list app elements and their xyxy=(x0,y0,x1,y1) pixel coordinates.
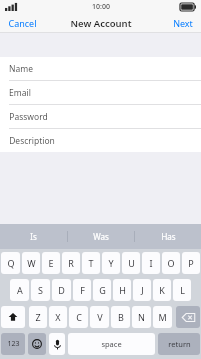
staticText: P xyxy=(188,257,194,269)
staticText: L xyxy=(180,284,185,296)
staticText: G xyxy=(99,284,106,296)
staticText: Was xyxy=(93,231,109,242)
button[interactable]: M xyxy=(153,306,172,328)
staticText: D xyxy=(58,284,65,296)
staticText: U xyxy=(128,257,135,269)
button[interactable]: U xyxy=(122,252,140,274)
staticText: Name xyxy=(9,63,33,75)
button[interactable]: Emoji xyxy=(28,333,46,355)
button[interactable]: Z xyxy=(29,306,47,328)
staticText: C xyxy=(76,311,82,323)
button[interactable]: Backspace xyxy=(176,306,200,328)
button[interactable]: N xyxy=(132,306,151,328)
button[interactable]: Description xyxy=(0,129,201,152)
button[interactable]: H xyxy=(113,279,131,301)
staticText: H xyxy=(119,284,126,296)
button[interactable]: A xyxy=(10,279,29,301)
staticText: Y xyxy=(108,257,114,269)
button[interactable]: Cancel xyxy=(0,15,45,31)
staticText: Is xyxy=(30,231,37,242)
button[interactable]: V xyxy=(90,306,109,328)
staticText: 10:00 xyxy=(92,2,110,12)
button[interactable]: O xyxy=(162,252,180,274)
staticText: N xyxy=(138,311,145,323)
staticText: 123 xyxy=(7,339,20,349)
staticText: W xyxy=(27,257,36,269)
staticText: X xyxy=(55,311,61,323)
button[interactable]: W xyxy=(22,252,40,274)
staticText: E xyxy=(48,257,54,269)
button[interactable]: Has xyxy=(135,224,201,249)
staticText: F xyxy=(80,284,85,296)
staticText: S xyxy=(38,284,43,296)
button[interactable]: I xyxy=(142,252,160,274)
staticText: Password xyxy=(9,111,48,123)
button[interactable]: Dictate xyxy=(49,333,65,355)
button[interactable]: D xyxy=(52,279,71,301)
staticText: O xyxy=(167,257,175,269)
button[interactable]: P xyxy=(182,252,200,274)
button[interactable]: K xyxy=(153,279,171,301)
button[interactable]: L xyxy=(173,279,191,301)
staticText: V xyxy=(97,311,103,323)
staticText: I xyxy=(149,257,153,269)
button[interactable]: C xyxy=(69,306,88,328)
button[interactable]: E xyxy=(42,252,60,274)
button[interactable]: G xyxy=(93,279,111,301)
staticText: Email xyxy=(9,87,31,99)
button[interactable]: T xyxy=(82,252,100,274)
button[interactable]: J xyxy=(133,279,151,301)
button[interactable]: X xyxy=(49,306,67,328)
button[interactable]: Name xyxy=(0,57,201,80)
staticText: space xyxy=(101,339,122,349)
button[interactable]: S xyxy=(31,279,50,301)
button[interactable]: B xyxy=(111,306,130,328)
staticText: return xyxy=(168,339,191,349)
staticText: Description xyxy=(9,135,55,147)
staticText: Z xyxy=(35,311,41,323)
button[interactable]: Y xyxy=(102,252,120,274)
staticText: T xyxy=(88,257,94,269)
button[interactable]: return xyxy=(158,333,200,355)
staticText: K xyxy=(159,284,165,296)
button[interactable]: Password xyxy=(0,105,201,128)
button[interactable]: R xyxy=(62,252,80,274)
staticText: B xyxy=(118,311,124,323)
button[interactable]: Q xyxy=(1,252,20,274)
staticText: A xyxy=(17,284,23,296)
staticText: J xyxy=(141,284,144,296)
button[interactable]: 123 xyxy=(1,333,25,355)
button[interactable]: F xyxy=(73,279,91,301)
staticText: Has xyxy=(161,231,176,242)
button[interactable]: Shift xyxy=(1,306,25,328)
button[interactable]: Is xyxy=(0,224,67,249)
staticText: Next xyxy=(173,17,193,29)
staticText: Q xyxy=(7,257,15,269)
staticText: New Account xyxy=(70,17,132,30)
staticText: M xyxy=(158,311,167,323)
button[interactable]: Email xyxy=(0,81,201,104)
staticText: Cancel xyxy=(8,17,37,29)
button[interactable]: Next xyxy=(165,15,201,31)
button[interactable]: Was xyxy=(68,224,134,249)
staticText: R xyxy=(68,257,74,269)
button[interactable]: space xyxy=(68,333,155,355)
